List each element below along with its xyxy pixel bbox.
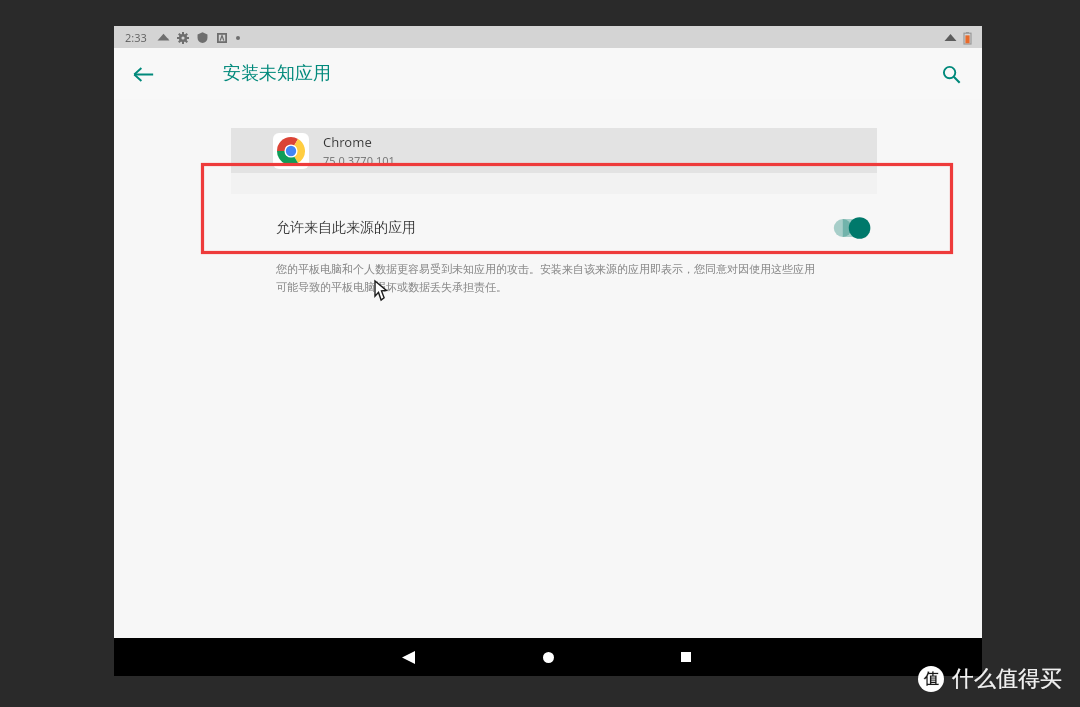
button[interactable]: Back [389, 638, 427, 676]
staticText: 值 [924, 670, 939, 689]
staticText: Chrome [323, 133, 372, 151]
staticText: 您的平板电脑和个人数据更容易受到未知应用的攻击。安装来自该来源的应用即表示，您同… [276, 262, 815, 276]
button[interactable]: Chrome [231, 128, 877, 173]
button[interactable]: 允许来自此来源的应用 [114, 194, 982, 262]
button[interactable]: Search [930, 53, 972, 95]
staticText: 允许来自此来源的应用 [276, 219, 416, 237]
button[interactable]: Home [529, 638, 567, 676]
button[interactable]: Back [122, 53, 164, 95]
staticText: 2:33 [125, 30, 147, 45]
staticText: 什么值得买 [952, 665, 1062, 693]
button[interactable]: Recents [667, 638, 705, 676]
staticText: 安装未知应用 [223, 62, 331, 85]
staticText: 75.0.3770.101 [323, 153, 395, 168]
staticText: 可能导致的平板电脑损坏或数据丢失承担责任。 [276, 280, 507, 294]
